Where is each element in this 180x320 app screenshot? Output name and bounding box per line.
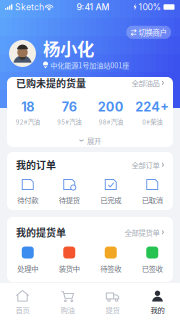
- staticText: 已取消: [142, 195, 163, 204]
- staticText: 95#汽油: [57, 118, 81, 125]
- button[interactable]: 全部提货单: [125, 228, 164, 236]
- button[interactable]: 处理中: [7, 246, 48, 272]
- staticText: 0#柴油: [142, 118, 162, 125]
- button[interactable]: 已取消: [131, 177, 173, 204]
- staticText: 处理中: [17, 264, 38, 272]
- staticText: 98#汽油: [99, 118, 123, 125]
- staticText: 杨小化: [43, 38, 94, 58]
- staticText: 切换商户: [138, 28, 166, 37]
- staticText: 18: [21, 101, 34, 113]
- staticText: Sketch: [15, 3, 44, 11]
- button[interactable]: 展开: [7, 125, 173, 155]
- button[interactable]: 提货: [90, 289, 135, 314]
- staticText: 224+: [135, 101, 169, 113]
- staticText: 已签收: [142, 264, 163, 272]
- staticText: 装货中: [59, 264, 80, 272]
- button[interactable]: 已完成: [90, 177, 131, 204]
- button[interactable]: 待提货: [48, 177, 90, 204]
- staticText: 展开: [87, 136, 101, 145]
- button[interactable]: 全部油品: [132, 79, 164, 87]
- button[interactable]: 已签收: [131, 246, 173, 272]
- button[interactable]: 全部订单: [132, 160, 164, 169]
- button[interactable]: 待付款: [7, 177, 48, 204]
- button[interactable]: 首页: [0, 289, 45, 314]
- button[interactable]: 待签收: [90, 246, 131, 272]
- staticText: 提货: [105, 305, 119, 314]
- button[interactable]: 购油: [45, 289, 90, 314]
- button[interactable]: 我的: [135, 289, 180, 314]
- staticText: 全部油品: [132, 79, 160, 87]
- staticText: 我的订单: [16, 159, 56, 171]
- staticText: 92#汽油: [16, 118, 40, 125]
- staticText: 待付款: [17, 195, 38, 204]
- staticText: 购油: [60, 305, 74, 314]
- staticText: 我的: [150, 305, 164, 314]
- button[interactable]: 切换商户: [126, 26, 171, 39]
- staticText: 我的提货单: [16, 226, 66, 238]
- staticText: 9:41 AM: [76, 3, 109, 11]
- staticText: 100%: [138, 3, 161, 11]
- staticText: 中化能源1号加油站001座: [50, 61, 129, 69]
- staticText: 待提货: [59, 195, 80, 204]
- staticText: 全部订单: [132, 160, 160, 169]
- button[interactable]: 装货中: [48, 246, 90, 272]
- staticText: 200: [98, 101, 124, 113]
- staticText: 首页: [15, 305, 29, 314]
- staticText: 已完成: [100, 195, 121, 204]
- staticText: 76: [62, 101, 77, 113]
- staticText: 已购未提的货量: [16, 77, 86, 89]
- staticText: 全部提货单: [125, 228, 160, 236]
- staticText: 待签收: [100, 264, 121, 272]
